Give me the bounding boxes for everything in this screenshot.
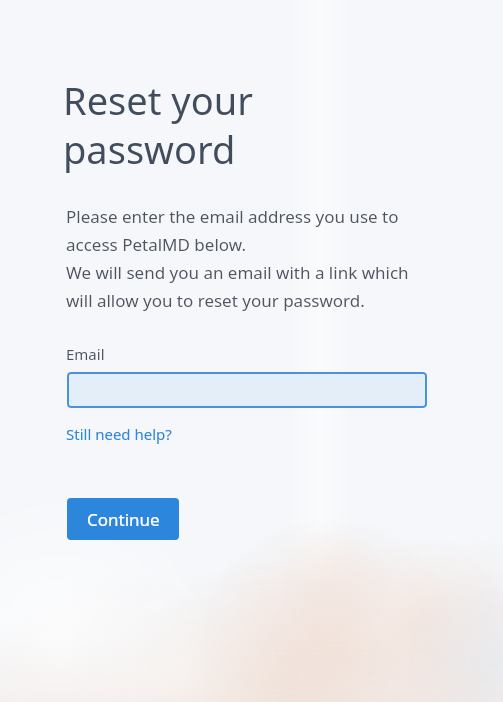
button[interactable]: Continue [67,498,179,540]
button[interactable] [67,372,427,408]
button[interactable]: Still need help? [66,424,172,444]
staticText: Still need help? [66,424,172,444]
staticText: Reset your password [63,74,253,175]
staticText: Please enter the email address you use t… [66,205,409,312]
staticText: Continue [87,508,160,531]
staticText: Email [66,344,105,364]
